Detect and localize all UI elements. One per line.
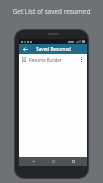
button[interactable]: More options xyxy=(79,55,84,64)
staticText: Saved Resumed xyxy=(36,46,71,52)
button[interactable]: Home xyxy=(47,157,59,166)
staticText: Resume Builder xyxy=(29,57,62,63)
button[interactable]: Recent apps xyxy=(67,157,79,166)
button[interactable]: Resume Builder xyxy=(19,54,87,65)
staticText: Get List of saved resumed xyxy=(0,7,103,16)
button[interactable]: Navigate up xyxy=(21,45,29,53)
button[interactable]: Back xyxy=(27,157,39,166)
